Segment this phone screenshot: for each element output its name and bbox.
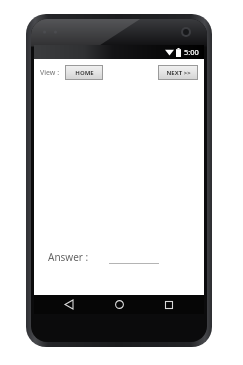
button[interactable]: HOME [65,65,103,80]
staticText: NEXT >> [166,69,191,77]
staticText: HOME [75,69,94,77]
button[interactable]: Back [54,295,84,314]
staticText: 5:00 [184,47,199,57]
button[interactable] [109,251,159,264]
staticText: Answer : [48,250,89,264]
button[interactable]: Recent apps [154,295,184,314]
button[interactable]: Home [104,295,134,314]
staticText: View : [40,68,60,78]
button[interactable]: NEXT >> [158,65,198,80]
